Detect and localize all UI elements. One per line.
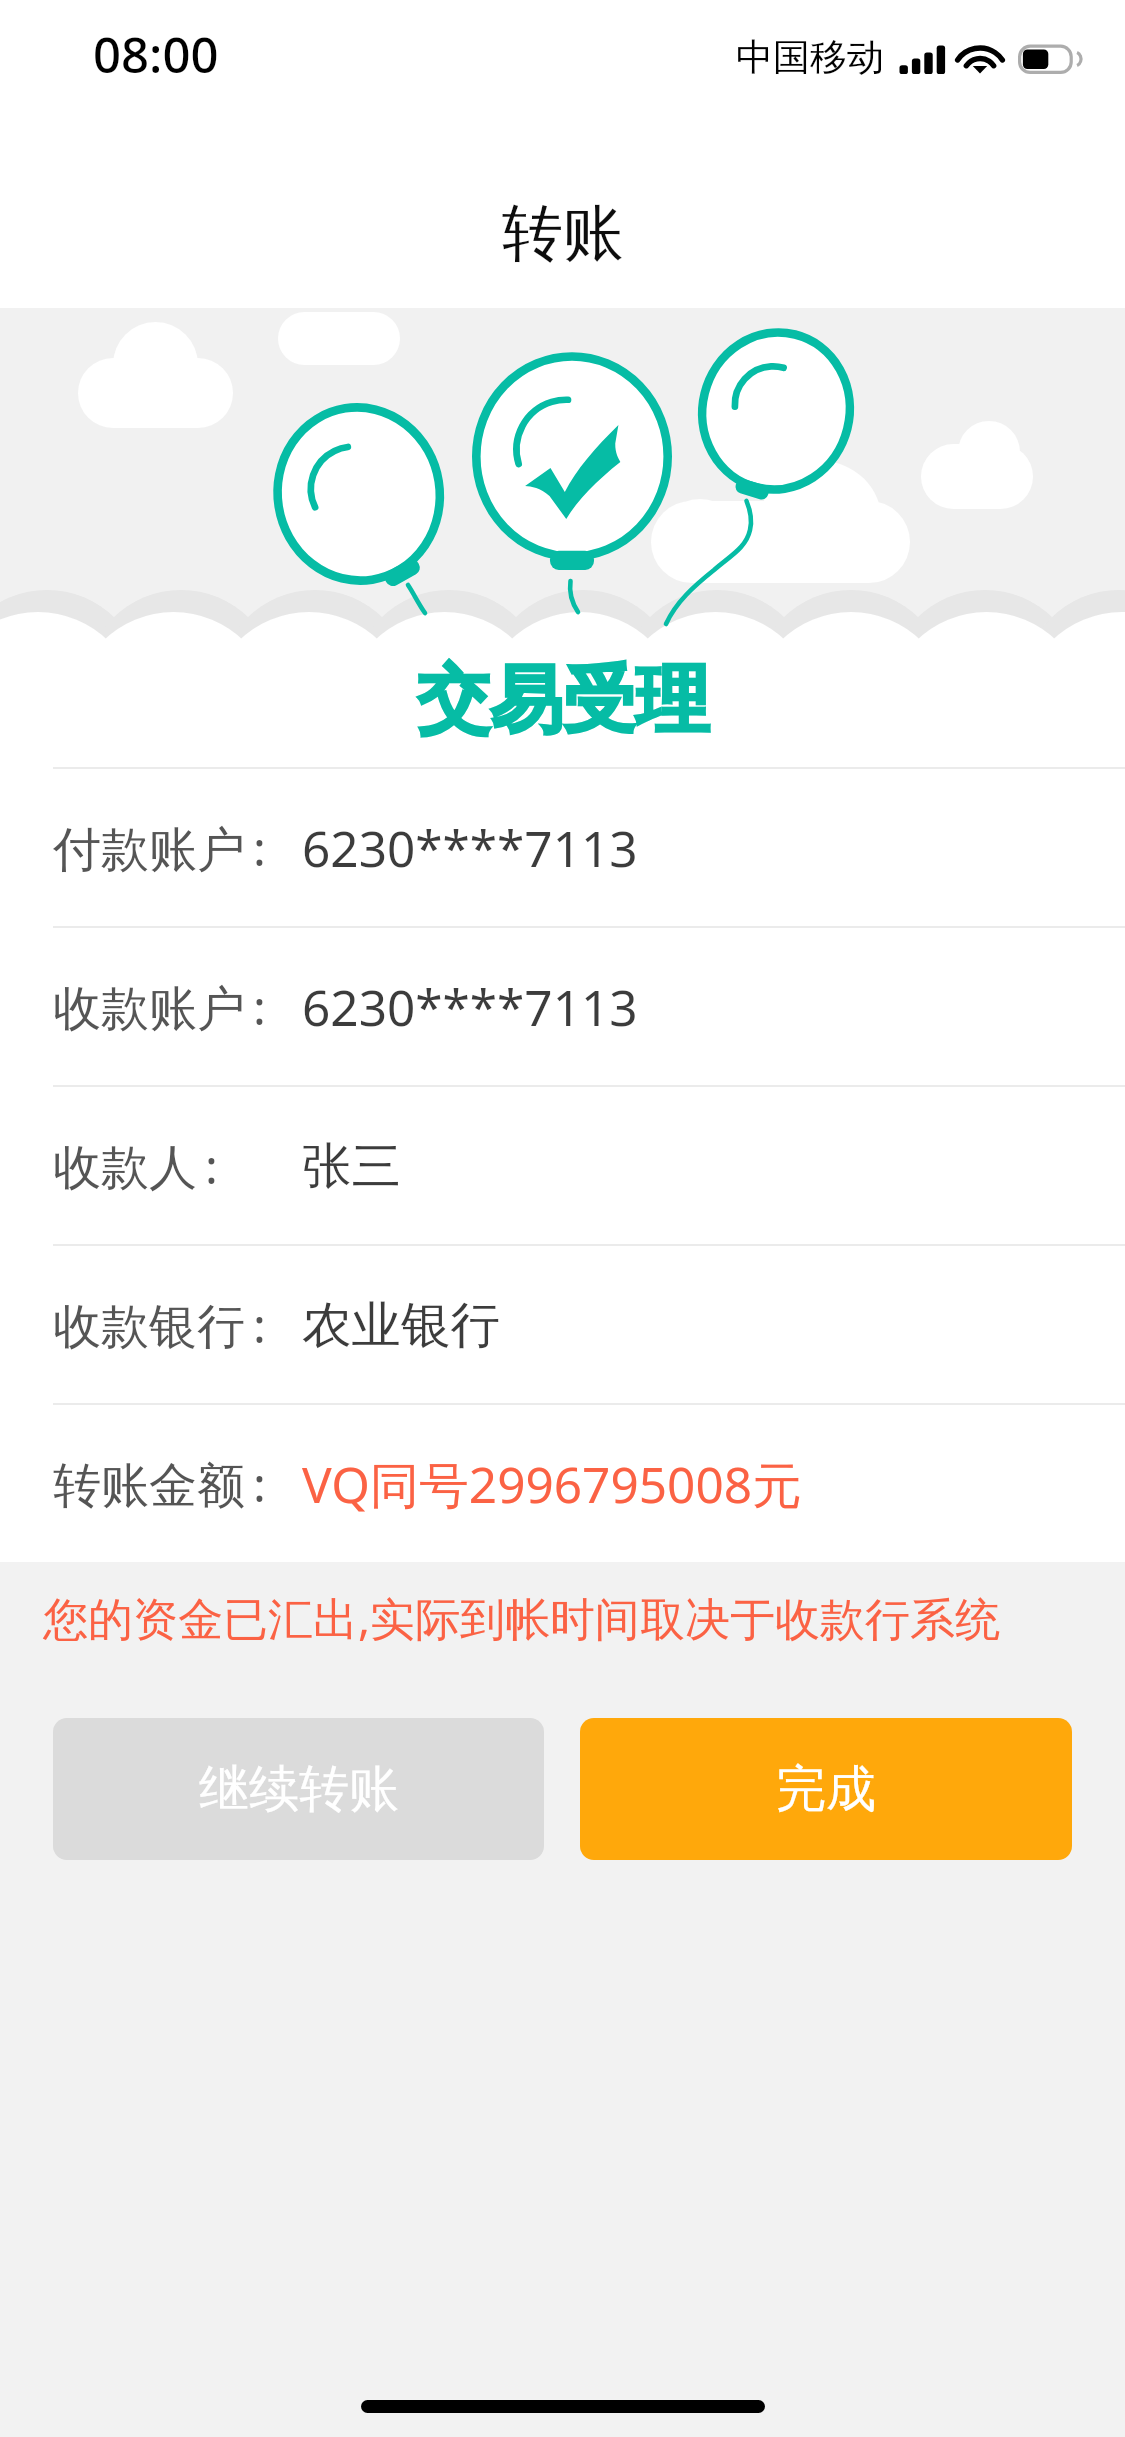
staticText: 08:00: [93, 21, 219, 88]
staticText: 6230****7113: [302, 973, 638, 1040]
staticText: 转账金额 :: [53, 1451, 266, 1517]
button[interactable]: 转账金额 :: [0, 1405, 1125, 1562]
staticText: 收款人 :: [53, 1133, 218, 1199]
button[interactable]: 收款银行 :: [0, 1246, 1125, 1403]
staticText: 张三: [302, 1135, 401, 1197]
button[interactable]: 继续转账: [53, 1718, 544, 1860]
staticText: 收款账户 :: [53, 974, 266, 1040]
staticText: 完成: [776, 1758, 876, 1821]
staticText: 6230****7113: [302, 814, 638, 881]
staticText: 中国移动: [736, 34, 884, 81]
staticText: 交易受理: [417, 655, 709, 747]
staticText: 收款银行 :: [53, 1292, 266, 1358]
staticText: 继续转账: [199, 1758, 399, 1821]
staticText: 您的资金已汇出,实际到帐时间取决于收款行系统: [43, 1587, 1001, 1648]
button[interactable]: 收款人 :: [0, 1087, 1125, 1244]
button[interactable]: 付款账户 :: [0, 769, 1125, 926]
staticText: 转账: [502, 195, 624, 272]
staticText: 付款账户 :: [53, 815, 266, 881]
staticText: VQ同号2996795008元: [302, 1450, 802, 1518]
button[interactable]: 完成: [580, 1718, 1072, 1860]
staticText: 农业银行: [302, 1294, 500, 1356]
button[interactable]: 收款账户 :: [0, 928, 1125, 1085]
